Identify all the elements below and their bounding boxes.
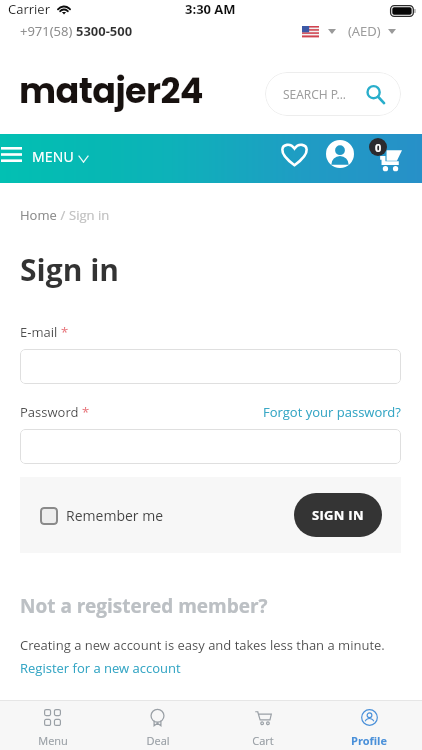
staticText: +971(58): [20, 22, 76, 40]
staticText: MENU: [32, 147, 74, 166]
staticText: Carrier: [8, 0, 50, 18]
staticText: 5300-500: [76, 22, 133, 40]
staticText: SIGN IN: [312, 506, 364, 524]
staticText: Sign in: [20, 249, 120, 290]
button[interactable]: Cart: [210, 701, 316, 750]
staticText: Menu: [38, 733, 68, 748]
button[interactable]: Remember me: [40, 506, 164, 525]
button[interactable]: Home: [20, 206, 57, 224]
button[interactable]: Wishlist: [278, 134, 310, 174]
staticText: Sign in: [69, 206, 110, 224]
staticText: 0: [375, 140, 382, 155]
button[interactable]: SIGN IN: [294, 493, 382, 537]
staticText: SEARCH P...: [283, 86, 347, 102]
staticText: *: [82, 403, 90, 421]
staticText: *: [61, 323, 69, 341]
button[interactable]: [20, 349, 401, 384]
staticText: Creating a new account is easy and takes…: [20, 636, 385, 654]
button[interactable]: Account: [324, 134, 356, 174]
button[interactable]: (AED): [348, 22, 396, 40]
button[interactable]: Register for a new account: [20, 659, 181, 677]
button[interactable]: matajer24: [19, 69, 203, 118]
staticText: Password: [20, 403, 79, 421]
staticText: (AED): [348, 22, 381, 40]
staticText: Profile: [351, 733, 387, 748]
button[interactable]: Menu: [0, 701, 105, 750]
staticText: E-mail: [20, 323, 58, 341]
button[interactable]: MENU: [0, 145, 92, 164]
button[interactable]: Forgot your password?: [263, 403, 401, 421]
button[interactable]: +971(58): [20, 22, 133, 40]
staticText: /: [57, 206, 69, 224]
button[interactable]: Profile: [316, 701, 422, 750]
staticText: Not a registered member?: [20, 593, 268, 619]
staticText: Remember me: [66, 506, 164, 525]
staticText: 3:30 AM: [185, 0, 236, 18]
staticText: Deal: [146, 733, 170, 748]
button[interactable]: SEARCH P...: [265, 72, 401, 116]
button[interactable]: Cart: [371, 134, 403, 174]
button[interactable]: Deal: [105, 701, 210, 750]
button[interactable]: [20, 429, 401, 464]
staticText: Cart: [252, 733, 274, 748]
button[interactable]: Language: [302, 26, 336, 37]
